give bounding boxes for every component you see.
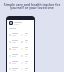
button[interactable] [9, 52, 33, 59]
button[interactable] [9, 31, 33, 38]
staticText: Simple care and health tracker for yours… [3, 2, 61, 10]
button[interactable] [9, 66, 33, 72]
button[interactable] [9, 21, 32, 25]
button[interactable] [9, 59, 33, 66]
button[interactable] [9, 45, 33, 52]
button[interactable] [9, 38, 33, 45]
